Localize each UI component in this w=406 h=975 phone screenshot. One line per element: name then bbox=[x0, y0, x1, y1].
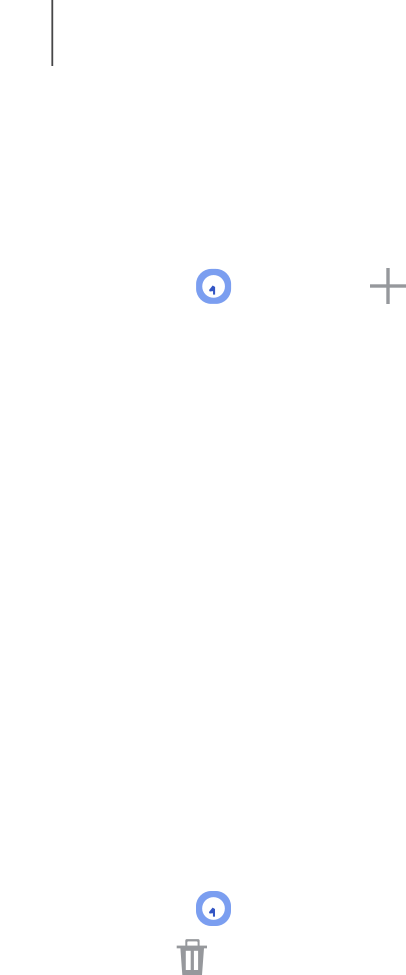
button[interactable]: Add bbox=[370, 268, 406, 304]
button[interactable]: Delete bbox=[177, 939, 207, 975]
button[interactable]: Pointer tool bbox=[196, 269, 231, 304]
button[interactable]: Pointer tool bbox=[196, 891, 231, 926]
